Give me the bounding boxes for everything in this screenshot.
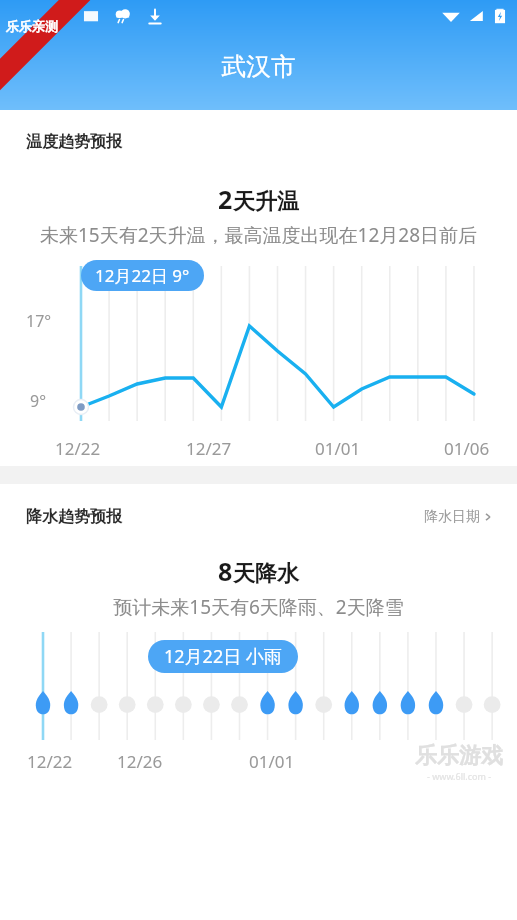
staticText: 01/06 — [444, 437, 490, 460]
staticText: - www.6ll.com - — [427, 770, 492, 782]
staticText: 12/22 — [27, 750, 73, 773]
staticText: 01/01 — [315, 437, 361, 460]
staticText: 天升温 — [233, 188, 299, 216]
staticText: 12月22日 9° — [95, 264, 190, 287]
staticText: 降水日期 — [424, 508, 480, 526]
staticText: 12/26 — [117, 750, 163, 773]
staticText: 温度趋势预报 — [26, 132, 122, 152]
staticText: 天降水 — [233, 560, 299, 588]
staticText: 8 — [218, 554, 233, 588]
staticText: 01/01 — [249, 750, 295, 773]
staticText: 预计未来15天有6天降雨、2天降雪 — [16, 594, 501, 620]
button[interactable]: 12月22日 9° — [81, 260, 204, 291]
button[interactable]: 降水日期 — [420, 504, 497, 530]
staticText: 9° — [30, 390, 47, 412]
staticText: 12月22日 小雨 — [164, 644, 282, 669]
staticText: 武汉市 — [221, 51, 296, 82]
staticText: 12/27 — [186, 437, 232, 460]
staticText: 降水趋势预报 — [26, 507, 122, 527]
staticText: 12/22 — [55, 437, 101, 460]
staticText: 17° — [26, 310, 52, 332]
staticText: 乐乐游戏 — [415, 742, 503, 770]
staticText: 未来15天有2天升温，最高温度出现在12月28日前后 — [24, 222, 493, 248]
button[interactable]: 12月22日 小雨 — [148, 640, 298, 673]
staticText: 2 — [218, 182, 233, 216]
staticText: 乐乐亲测 — [6, 18, 58, 34]
